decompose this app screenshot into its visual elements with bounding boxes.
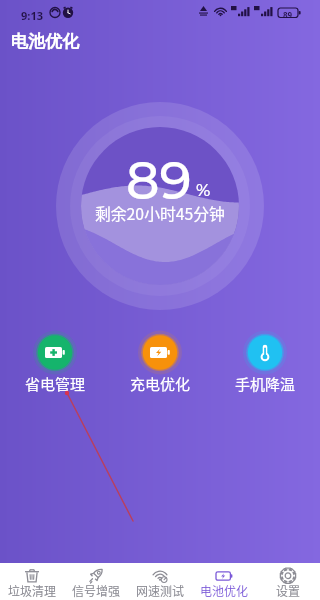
staticText: 89 (126, 149, 192, 212)
button[interactable]: 充电优化 (124, 334, 196, 396)
staticText: 89 (283, 9, 293, 20)
button[interactable]: 垃圾清理 (0, 563, 64, 600)
button[interactable]: 信号增强 (64, 563, 128, 600)
staticText: 网速测试 (136, 582, 185, 599)
button[interactable]: 设置 (256, 563, 320, 600)
staticText: 信号增强 (72, 582, 121, 599)
button[interactable]: 手机降温 (229, 334, 301, 396)
staticText: 9:13 (21, 8, 43, 23)
staticText: % (196, 180, 211, 201)
button[interactable]: 网速测试 (128, 563, 192, 600)
button[interactable]: 电池优化 (192, 563, 256, 600)
staticText: 电池优化 (200, 582, 249, 599)
staticText: 垃圾清理 (8, 582, 57, 599)
staticText: 设置 (276, 582, 301, 599)
staticText: 电池优化 (11, 31, 79, 52)
staticText: 省电管理 (25, 373, 86, 395)
staticText: 手机降温 (235, 373, 296, 395)
button[interactable]: 省电管理 (19, 334, 91, 396)
staticText: 充电优化 (130, 373, 191, 395)
staticText: 剩余20小时45分钟 (95, 202, 225, 225)
